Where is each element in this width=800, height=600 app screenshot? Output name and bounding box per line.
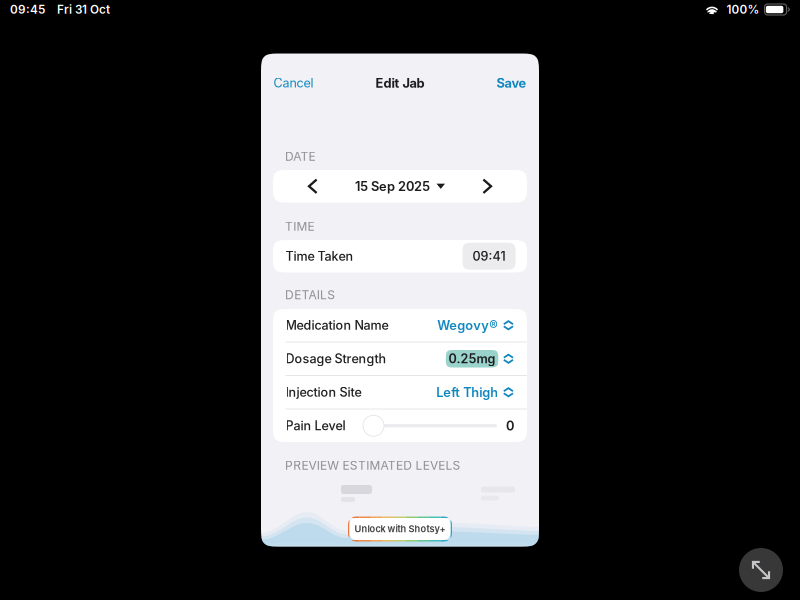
button[interactable]: Next date: [447, 170, 527, 202]
staticText: Time Taken: [285, 249, 353, 264]
staticText: Wegovy®: [437, 317, 498, 333]
staticText: 09:45: [10, 2, 45, 17]
staticText: DATE: [285, 149, 316, 164]
staticText: Cancel: [273, 75, 313, 91]
staticText: PREVIEW ESTIMATED LEVELS: [285, 458, 461, 473]
button[interactable]: 15 Sep 2025: [355, 170, 445, 202]
staticText: TIME: [285, 219, 315, 234]
staticText: Unlock with Shotsy+: [354, 523, 445, 534]
button[interactable]: Dosage Strength: [273, 342, 527, 375]
button[interactable]: 09:41: [462, 243, 515, 270]
staticText: Injection Site: [285, 385, 361, 400]
staticText: Edit Jab: [375, 75, 424, 91]
staticText: Medication Name: [285, 318, 388, 333]
button[interactable]: Medication Name: [273, 309, 527, 341]
staticText: DETAILS: [285, 288, 335, 302]
staticText: 100%: [727, 2, 760, 17]
button[interactable]: Save: [496, 73, 526, 93]
staticText: 0: [506, 418, 514, 433]
button[interactable]: Injection Site: [273, 376, 527, 408]
staticText: Fri 31 Oct: [57, 2, 110, 17]
button[interactable]: Enter full screen: [739, 548, 783, 592]
button[interactable]: Unlock with Shotsy+: [348, 516, 452, 541]
staticText: Pain Level: [285, 418, 345, 433]
staticText: 15 Sep 2025: [355, 178, 430, 194]
staticText: Save: [496, 75, 526, 91]
button[interactable]: Cancel: [273, 73, 313, 93]
staticText: 09:41: [472, 249, 505, 264]
button[interactable]: Previous date: [273, 170, 353, 202]
staticText: Left Thigh: [436, 384, 498, 400]
staticText: 0.25mg: [449, 351, 496, 366]
staticText: Dosage Strength: [285, 351, 386, 366]
